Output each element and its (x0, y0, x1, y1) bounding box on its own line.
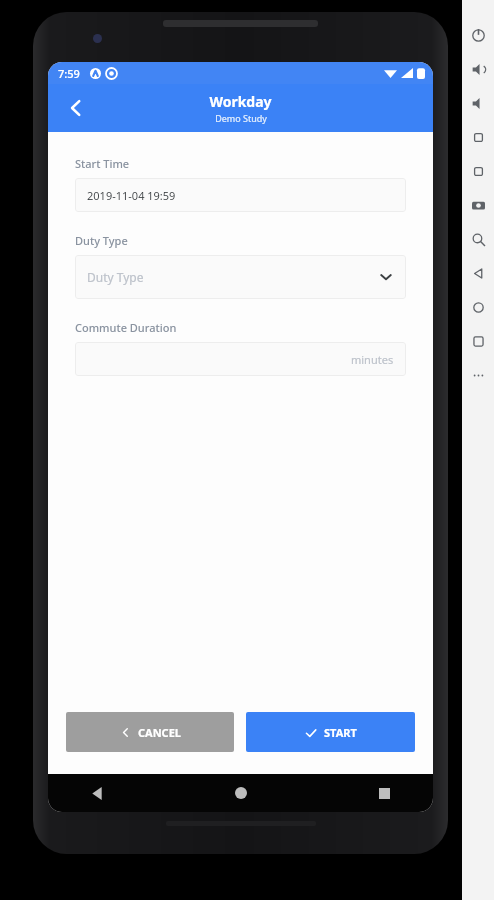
button[interactable]: Emulator control 3 (469, 128, 487, 146)
button[interactable]: START (246, 712, 415, 752)
button[interactable]: Emulator control 7 (469, 264, 487, 282)
button[interactable]: Duty Type (75, 255, 406, 299)
staticText: Duty Type (87, 269, 144, 285)
staticText: 2019-11-04 19:59 (87, 188, 176, 203)
button[interactable]: Emulator control 1 (469, 60, 487, 78)
button[interactable]: Back (80, 776, 114, 810)
staticText: Start Time (75, 156, 130, 171)
button[interactable]: Emulator control 6 (469, 230, 487, 248)
button[interactable]: Back (56, 88, 96, 128)
button[interactable]: CANCEL (66, 712, 234, 752)
button[interactable]: Emulator control 5 (469, 196, 487, 214)
button[interactable]: 2019-11-04 19:59 (75, 178, 406, 212)
staticText: Duty Type (75, 233, 128, 248)
button[interactable]: Emulator control 8 (469, 298, 487, 316)
staticText: minutes (351, 352, 394, 367)
staticText: START (324, 725, 357, 740)
button[interactable]: Emulator control 4 (469, 162, 487, 180)
button[interactable]: Emulator control 10 (469, 366, 487, 384)
button[interactable]: minutes (75, 342, 406, 376)
staticText: Commute Duration (75, 320, 177, 335)
button[interactable]: Emulator control 0 (469, 26, 487, 44)
staticText: CANCEL (138, 725, 181, 740)
staticText: Workday (209, 92, 272, 111)
button[interactable]: Recents (367, 776, 401, 810)
button[interactable]: Emulator control 2 (469, 94, 487, 112)
staticText: Demo Study (215, 112, 267, 124)
button[interactable]: Emulator control 9 (469, 332, 487, 350)
staticText: 7:59 (58, 66, 80, 81)
button[interactable]: Home (224, 776, 258, 810)
